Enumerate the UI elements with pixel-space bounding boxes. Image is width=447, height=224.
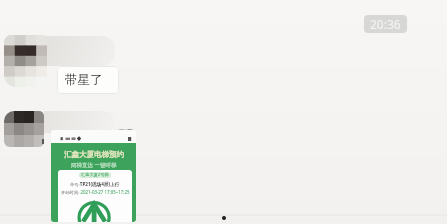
staticText: 单号:TP21(现场4层)上行: [70, 181, 120, 187]
staticText: 开始时间: 2021-03-27 17:05~17:25: [61, 189, 130, 195]
button[interactable]: 带星了: [57, 66, 119, 94]
button[interactable]: 20:36: [364, 15, 407, 33]
staticText: 两梯直达 一键呼梯: [71, 161, 117, 168]
staticText: 带星了: [65, 72, 103, 88]
staticText: 汇鑫大厦2号梯: [81, 172, 109, 178]
staticText: 汇鑫大厦电梯预约: [64, 150, 124, 159]
staticText: 20:36: [370, 16, 401, 32]
button[interactable]: 汇鑫大厦电梯预约: [51, 130, 136, 222]
